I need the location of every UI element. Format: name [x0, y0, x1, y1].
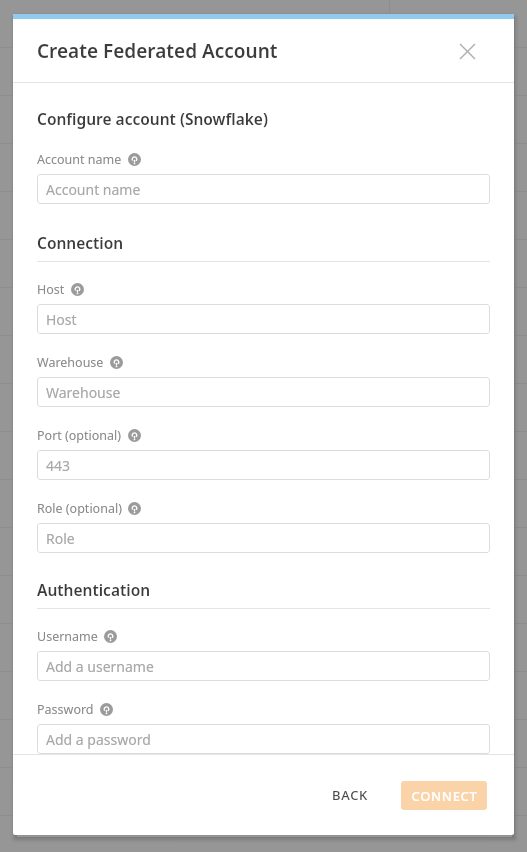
button[interactable]: Add a username	[37, 651, 490, 681]
staticText: 443	[46, 456, 71, 475]
staticText: Host	[37, 281, 65, 298]
button[interactable]: 443	[37, 450, 490, 480]
button[interactable]: Account name	[37, 174, 490, 204]
staticText: Port (optional)	[37, 427, 122, 444]
staticText: Add a username	[46, 657, 154, 676]
staticText: Role (optional)	[37, 500, 122, 517]
staticText: CONNECT	[411, 787, 478, 805]
staticText: Username	[37, 628, 98, 645]
button[interactable]: Role	[37, 523, 490, 553]
button[interactable]: Warehouse	[37, 377, 490, 407]
staticText: Password	[37, 701, 94, 718]
staticText: Add a password	[46, 730, 151, 749]
staticText: Configure account (Snowflake)	[37, 108, 268, 129]
staticText: Account name	[37, 151, 122, 168]
button[interactable]: Add a password	[37, 724, 490, 754]
button[interactable]: CONNECT	[401, 781, 487, 810]
button[interactable]: Close	[453, 37, 481, 65]
staticText: BACK	[332, 786, 369, 804]
staticText: Authentication	[37, 579, 151, 600]
staticText: Create Federated Account	[37, 38, 278, 64]
staticText: Host	[46, 310, 77, 329]
staticText: Connection	[37, 232, 124, 253]
staticText: Role	[46, 529, 75, 548]
button[interactable]: Host	[37, 304, 490, 334]
staticText: Account name	[46, 180, 141, 199]
staticText: Warehouse	[46, 383, 121, 402]
staticText: Warehouse	[37, 354, 104, 371]
button[interactable]: BACK	[318, 778, 383, 812]
